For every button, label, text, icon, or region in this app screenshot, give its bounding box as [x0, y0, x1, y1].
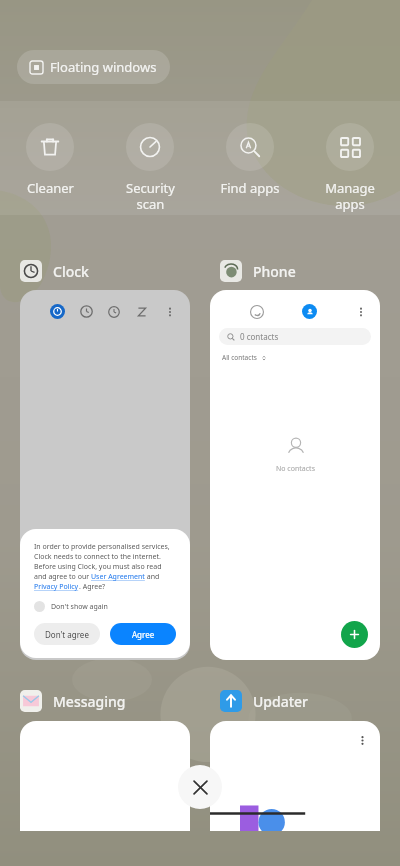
staticText: Floating windows: [50, 58, 157, 76]
staticText: Phone: [253, 262, 296, 281]
staticText: Don't agree: [45, 629, 89, 640]
button[interactable]: Clock: [20, 260, 89, 282]
staticText: Find apps: [220, 179, 280, 197]
button[interactable]: Agree: [110, 623, 176, 645]
button[interactable]: Close: [178, 765, 222, 809]
staticText: Don't show again: [51, 602, 108, 612]
staticText: No contacts: [276, 464, 315, 474]
button[interactable]: Cleaner: [0, 121, 100, 199]
button[interactable]: Floating windows: [17, 50, 170, 84]
staticText: Updater: [253, 692, 309, 711]
button[interactable]: Security scan: [100, 121, 200, 214]
button[interactable]: Messaging: [20, 690, 126, 712]
button[interactable]: 0 contacts: [219, 328, 371, 345]
staticText: Clock needs to connect to the internet.: [34, 552, 161, 562]
staticText: In order to provide personalised service…: [34, 542, 170, 552]
staticText: Clock: [53, 262, 89, 281]
button[interactable]: Don't show again: [34, 601, 108, 612]
staticText: Agree: [132, 629, 155, 640]
button[interactable]: [210, 721, 380, 831]
staticText: and: [145, 572, 160, 582]
button[interactable]: Don't agree: [34, 623, 100, 645]
button[interactable]: Add contact: [341, 621, 368, 648]
button[interactable]: Manage apps: [300, 121, 400, 214]
staticText: Manage apps: [325, 179, 375, 212]
staticText: 0 contacts: [240, 331, 279, 342]
staticText: . Agree?: [79, 582, 106, 592]
button[interactable]: Phone: [220, 260, 296, 282]
button[interactable]: [20, 721, 190, 831]
button[interactable]: In order to provide personalised service…: [20, 290, 190, 660]
staticText: Before using Clock, you must also read: [34, 562, 162, 572]
button[interactable]: Privacy Policy: [34, 582, 79, 592]
button[interactable]: Find apps: [200, 121, 300, 199]
staticText: Cleaner: [27, 179, 74, 197]
staticText: All contacts: [222, 353, 257, 362]
button[interactable]: User Agreement: [91, 572, 145, 582]
button[interactable]: 0 contacts: [210, 290, 380, 660]
staticText: Security scan: [126, 179, 175, 212]
button[interactable]: Updater: [220, 690, 309, 712]
staticText: Messaging: [53, 692, 126, 711]
button[interactable]: All contacts: [222, 353, 267, 362]
staticText: and agree to our: [34, 572, 91, 582]
